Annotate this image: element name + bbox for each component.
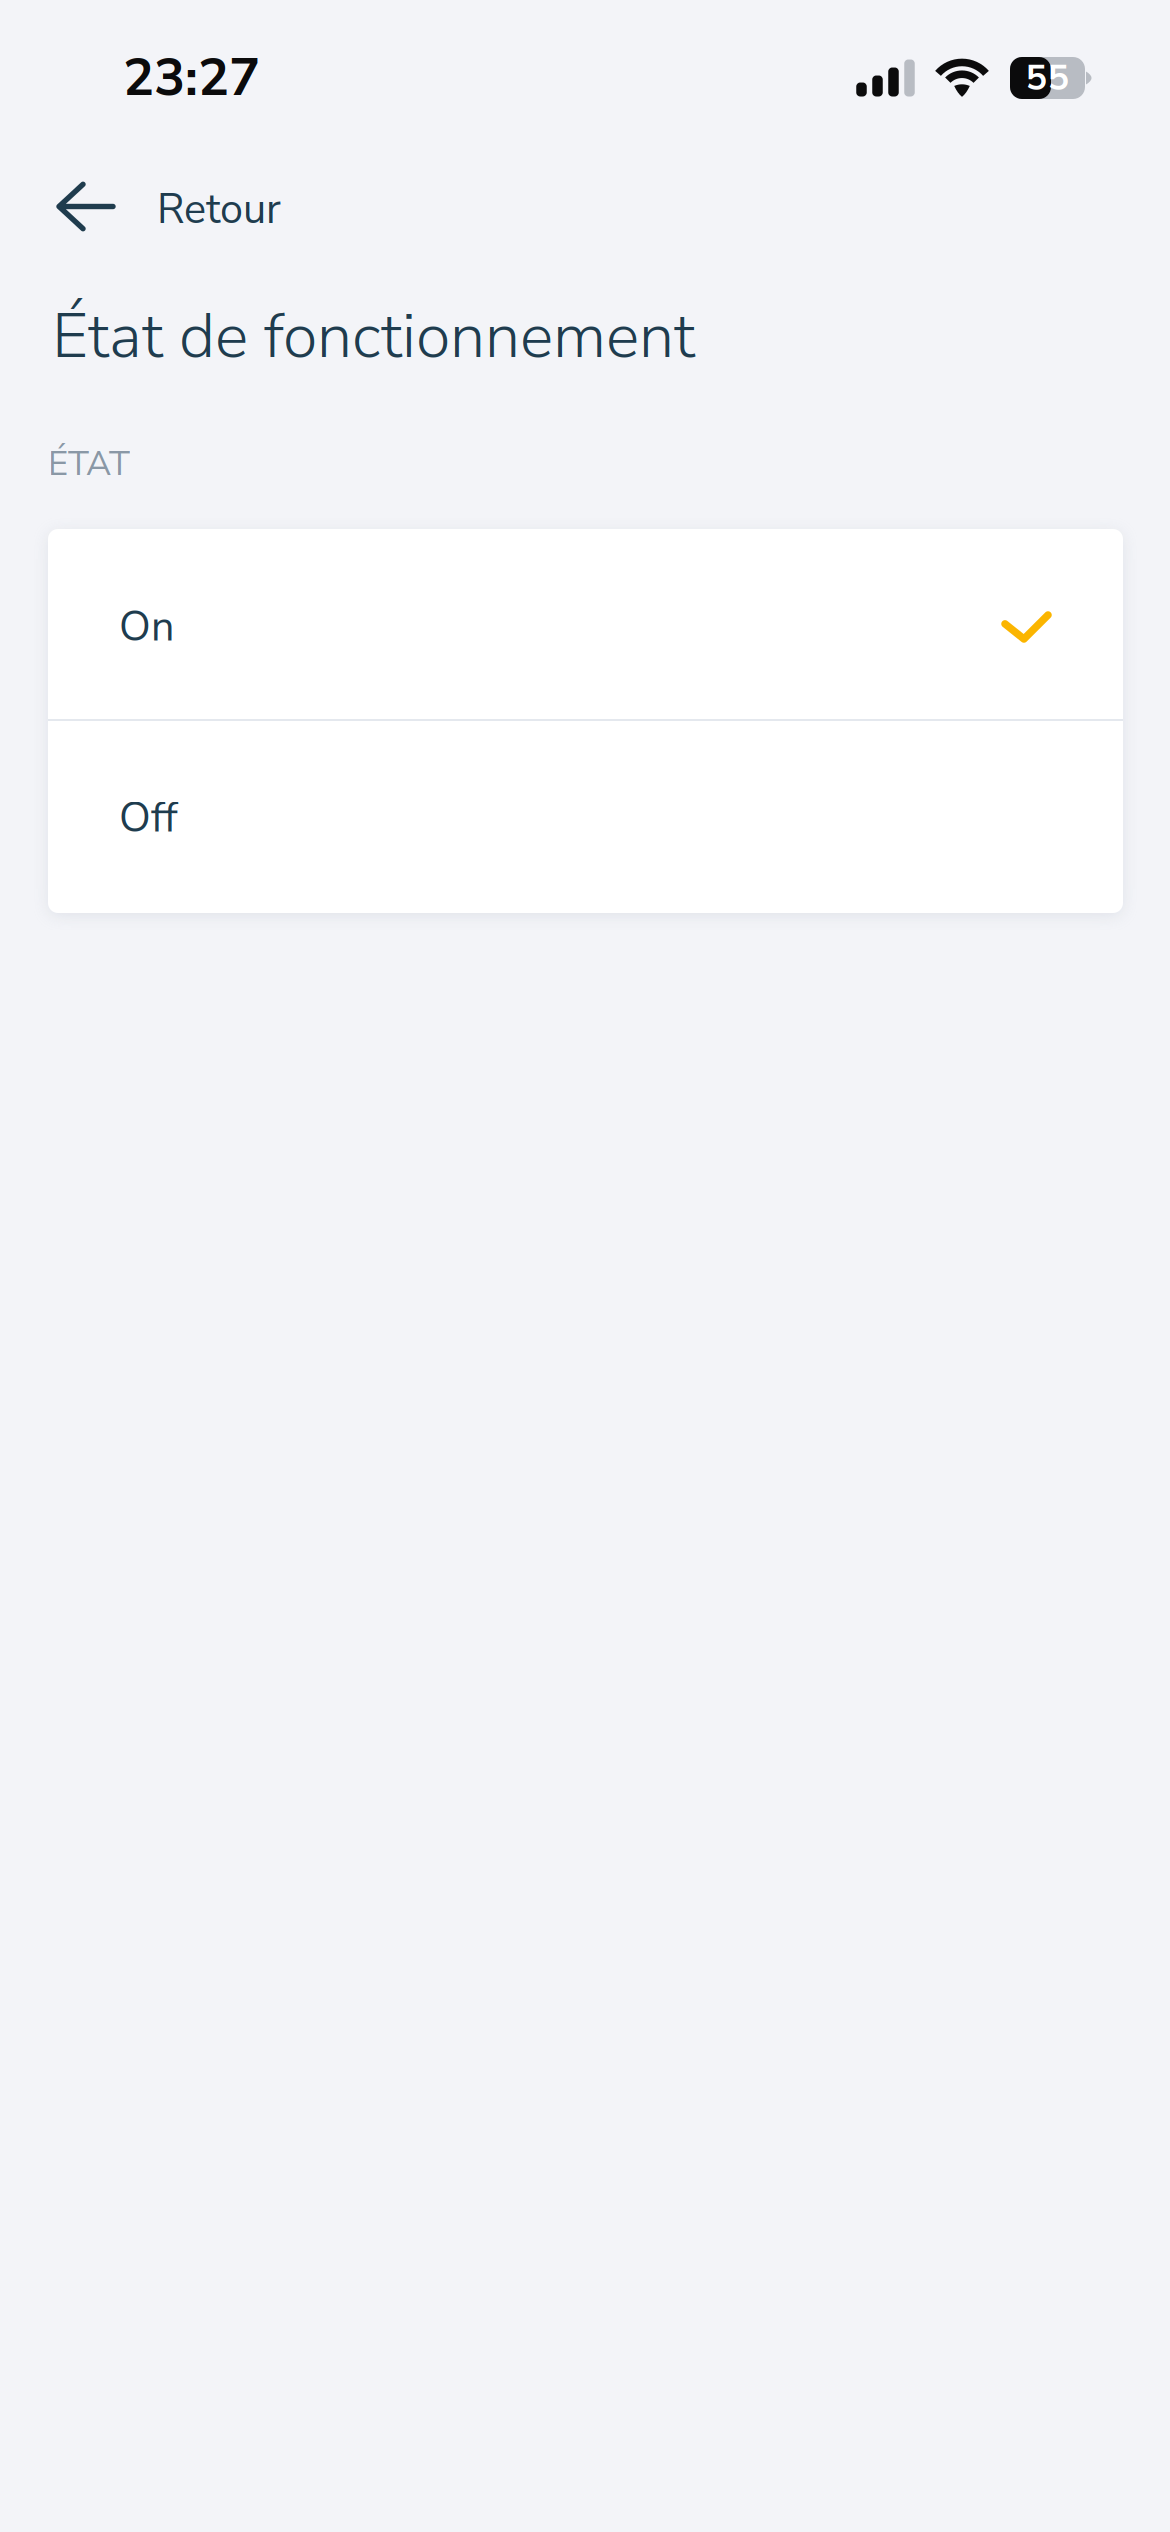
staticText: Off [119,790,178,846]
button[interactable]: On [48,529,1123,719]
staticText: On [119,599,174,655]
staticText: Retour [157,181,281,238]
staticText: État de fonctionnement [52,294,695,379]
button[interactable]: Retour [0,160,1170,253]
staticText: 23:27 [123,42,260,113]
staticText: 55 [1025,53,1069,102]
button[interactable]: Off [48,721,1123,913]
staticText: ÉTAT [48,440,130,487]
